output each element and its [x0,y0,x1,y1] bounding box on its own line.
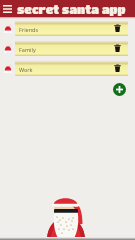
button[interactable]: Add new list [113,83,126,96]
staticText: Work [19,66,33,73]
button[interactable]: Work [15,61,128,76]
button[interactable]: Friends [15,21,128,36]
staticText: Family [19,46,36,53]
button[interactable]: Delete Family [113,44,122,53]
button[interactable]: Delete Work [113,64,122,73]
staticText: secret santa app [17,2,126,16]
button[interactable]: Family [15,41,128,56]
button[interactable]: Delete Friends [113,24,122,33]
button[interactable]: Open navigation menu [1,2,14,15]
staticText: Friends [19,26,39,33]
